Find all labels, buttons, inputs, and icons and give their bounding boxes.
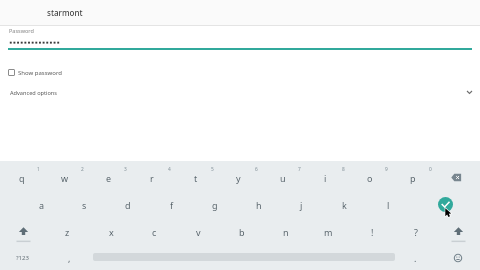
button[interactable]: v [177,218,220,245]
staticText: . [414,252,417,264]
button[interactable]: Show password [8,66,62,79]
staticText: j [300,199,303,211]
button[interactable]: x [90,218,133,245]
staticText: 6 [255,166,258,173]
button[interactable]: ?123 [1,245,44,270]
staticText: o [367,172,373,184]
staticText: m [324,226,333,238]
button[interactable] [445,245,471,270]
button[interactable]: Advanced options [0,84,480,101]
button[interactable] [437,218,480,245]
button[interactable]: i [304,164,347,191]
button[interactable]: z [46,218,89,245]
button[interactable]: w [43,164,86,191]
staticText: 8 [342,166,345,173]
button[interactable]: n [264,218,307,245]
button[interactable]: a [20,191,63,218]
button[interactable]: y [217,164,260,191]
button[interactable]: b [220,218,263,245]
staticText: e [106,172,112,184]
button[interactable]: k [323,191,366,218]
button[interactable] [2,218,45,245]
button[interactable]: p [391,164,434,191]
button[interactable]: ! [351,218,394,245]
staticText: i [324,172,327,184]
staticText: t [194,172,198,184]
staticText: u [280,172,286,184]
staticText: Show password [18,69,62,77]
staticText: y [236,172,241,184]
staticText: 3 [124,166,127,173]
staticText: b [239,226,245,238]
staticText: w [61,172,69,184]
staticText: a [39,199,45,211]
button[interactable]: s [63,191,106,218]
button[interactable]: c [133,218,176,245]
button[interactable]: e [87,164,130,191]
staticText: q [19,172,25,184]
staticText: n [283,226,289,238]
button[interactable] [438,197,453,212]
button[interactable]: j [280,191,323,218]
staticText: v [196,226,201,238]
button[interactable]: . [400,245,430,270]
staticText: 0 [429,166,432,173]
button[interactable]: l [367,191,410,218]
staticText: 9 [385,166,388,173]
button[interactable]: d [106,191,149,218]
button[interactable]: q [0,164,43,191]
staticText: p [410,172,416,184]
staticText: Advanced options [10,89,57,97]
button[interactable]: f [150,191,193,218]
button[interactable]: m [307,218,350,245]
button[interactable]: t [174,164,217,191]
staticText: x [109,226,114,238]
staticText: d [125,199,131,211]
staticText: Password [9,27,34,34]
staticText: 1 [37,166,40,173]
staticText: f [170,199,174,211]
staticText: 2 [81,166,84,173]
staticText: 7 [298,166,301,173]
button[interactable]: ? [394,218,437,245]
staticText: starmont [47,7,83,18]
button[interactable]: r [130,164,173,191]
staticText: h [256,199,262,211]
button[interactable]: h [237,191,280,218]
staticText: 4 [168,166,171,173]
staticText: z [65,226,70,238]
button[interactable]: o [348,164,391,191]
staticText: , [68,252,71,264]
button[interactable]: , [54,245,84,270]
staticText: r [150,172,154,184]
button[interactable] [435,164,478,191]
staticText: l [387,199,390,211]
button[interactable] [8,33,472,51]
button[interactable]: g [193,191,236,218]
staticText: s [82,199,87,211]
button[interactable]: u [261,164,304,191]
staticText: ! [371,226,374,238]
staticText: g [212,199,218,211]
staticText: k [342,199,347,211]
staticText: 5 [211,166,214,173]
staticText: c [152,226,157,238]
staticText: ?123 [16,254,29,262]
staticText: ? [414,226,418,238]
